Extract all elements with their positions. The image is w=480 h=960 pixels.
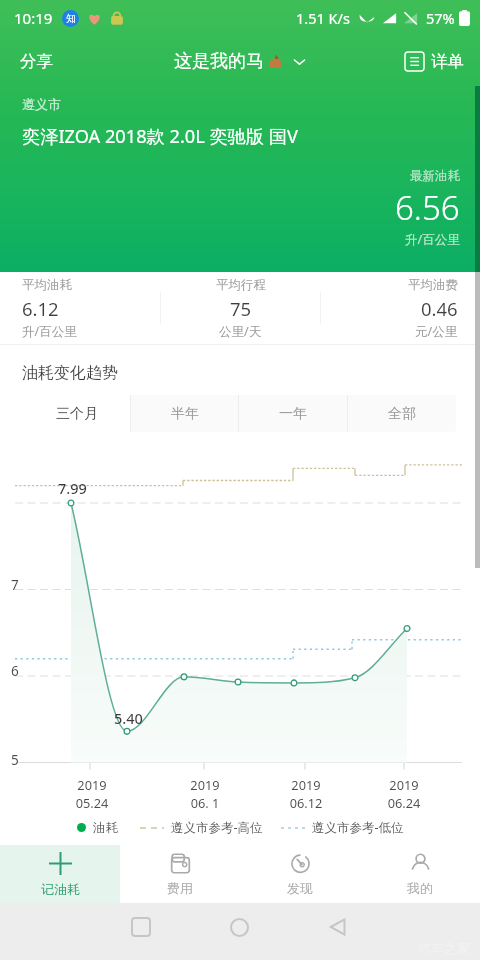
- button[interactable]: 这是我的马: [174, 44, 307, 79]
- staticText: 2019 06.24: [374, 776, 434, 812]
- staticText: 2019 06. 1: [175, 776, 235, 812]
- button[interactable]: 全部: [348, 395, 456, 432]
- staticText: 升/百公里: [22, 323, 77, 340]
- staticText: 油耗: [93, 820, 118, 836]
- button[interactable]: 发现: [240, 845, 360, 903]
- staticText: 平均油费: [408, 277, 458, 293]
- staticText: 知: [66, 12, 76, 25]
- staticText: 分享: [20, 51, 53, 72]
- staticText: 遵义市参考-高位: [171, 819, 263, 836]
- staticText: 0.46: [421, 296, 458, 321]
- staticText: 2019 05.24: [62, 776, 122, 812]
- button[interactable]: 半年: [131, 395, 238, 432]
- staticText: 公里/天: [219, 323, 262, 340]
- button[interactable]: 三个月: [23, 395, 130, 432]
- button[interactable]: 详单: [403, 45, 466, 78]
- staticText: 三个月: [56, 405, 98, 423]
- button[interactable]: 记油耗: [0, 845, 120, 903]
- staticText: 详单: [431, 51, 464, 72]
- staticText: 7: [11, 576, 19, 594]
- staticText: 5: [11, 751, 19, 769]
- staticText: 最新油耗: [410, 168, 460, 184]
- staticText: 费用: [167, 880, 193, 896]
- staticText: 半年: [171, 405, 199, 423]
- staticText: 遵义市参考-低位: [312, 819, 404, 836]
- staticText: 奕泽IZOA 2018款 2.0L 奕驰版 国V: [22, 124, 298, 149]
- button[interactable]: Back: [314, 903, 362, 951]
- staticText: 升/百公里: [405, 231, 460, 248]
- staticText: 元/公里: [415, 323, 458, 340]
- staticText: 全部: [388, 405, 416, 423]
- staticText: 6: [11, 662, 19, 680]
- staticText: 7.99: [58, 478, 87, 498]
- button[interactable]: 费用: [120, 845, 240, 903]
- staticText: 这是我的马: [174, 50, 264, 73]
- staticText: 一年: [279, 405, 307, 423]
- staticText: 5.40: [114, 708, 143, 728]
- staticText: 57%: [426, 8, 455, 28]
- staticText: 6.56: [395, 185, 460, 230]
- button[interactable]: 一年: [239, 395, 347, 432]
- staticText: 我的: [407, 880, 433, 896]
- staticText: 遵义市: [22, 96, 61, 112]
- staticText: 2019 06.12: [276, 776, 336, 812]
- button[interactable]: Home: [215, 903, 263, 951]
- button[interactable]: 我的: [360, 845, 480, 903]
- staticText: 6.12: [22, 296, 59, 321]
- staticText: 记油耗: [41, 881, 80, 897]
- staticText: 75: [230, 296, 252, 321]
- staticText: 平均油耗: [22, 277, 72, 293]
- staticText: 平均行程: [216, 277, 266, 293]
- button[interactable]: 分享: [16, 45, 57, 78]
- staticText: 发现: [287, 880, 313, 896]
- staticText: 油耗变化趋势: [22, 363, 118, 383]
- staticText: 10:19: [14, 8, 53, 28]
- button[interactable]: Recents: [117, 903, 165, 951]
- staticText: 1.51 K/s: [296, 8, 350, 28]
